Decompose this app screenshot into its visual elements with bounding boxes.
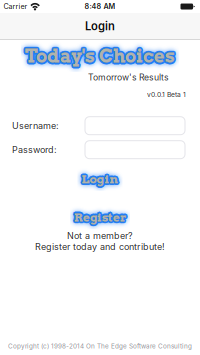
staticText: Today's Choices (25, 44, 175, 66)
staticText: Register (73, 211, 125, 225)
staticText: Register (75, 210, 127, 224)
staticText: Register (74, 210, 126, 224)
staticText: Register (75, 211, 127, 225)
staticText: Register (75, 211, 127, 225)
staticText: Today's Choices (25, 45, 175, 67)
staticText: Today's Choices (25, 46, 175, 68)
staticText: Today's Choices (24, 46, 174, 68)
staticText: Password: (12, 144, 57, 155)
staticText: Login (81, 173, 118, 188)
staticText: Today's Choices (26, 46, 176, 68)
staticText: Login (82, 171, 119, 186)
staticText: Register (73, 211, 125, 225)
staticText: Register (74, 212, 126, 226)
staticText: Today's Choices (26, 46, 176, 68)
staticText: Today's Choices (25, 47, 175, 69)
staticText: Login (80, 170, 117, 185)
staticText: Today's Choices (25, 46, 175, 69)
staticText: Register today and contribute! (35, 241, 165, 252)
staticText: Today's Choices (24, 44, 174, 66)
staticText: Today's Choices (25, 43, 175, 66)
staticText: Today's Choices (24, 46, 174, 68)
staticText: Today's Choices (26, 44, 176, 66)
staticText: Register (74, 212, 126, 226)
staticText: Register (72, 210, 124, 224)
staticText: Register (75, 209, 127, 223)
staticText: Register (75, 210, 127, 224)
staticText: Today's Choices (23, 45, 173, 67)
staticText: Login (81, 173, 118, 187)
staticText: Today's Choices (26, 46, 176, 68)
staticText: Register (74, 209, 126, 223)
staticText: Login (81, 173, 118, 188)
staticText: Login (83, 171, 120, 185)
staticText: Register (73, 209, 125, 224)
staticText: Login (81, 172, 118, 186)
button[interactable]: Register (60, 207, 140, 227)
staticText: Today's Choices (23, 45, 173, 67)
staticText: Login (82, 172, 119, 187)
staticText: 8:48 AM (84, 2, 115, 11)
staticText: Login (81, 172, 118, 187)
staticText: Copyright (c) 1998-2014 On The Edge Soft… (8, 342, 192, 350)
staticText: Register (73, 209, 125, 223)
staticText: Login (81, 172, 118, 186)
staticText: Register (72, 210, 124, 224)
staticText: Login (83, 172, 120, 186)
staticText: Login (83, 170, 120, 185)
staticText: Login (82, 172, 119, 186)
staticText: Login (83, 173, 120, 187)
staticText: Login (81, 172, 118, 186)
staticText: Today's Choices (24, 45, 174, 67)
staticText: Register (74, 209, 126, 223)
staticText: Login (85, 19, 115, 33)
staticText: Carrier (3, 2, 27, 11)
staticText: Today's Choices (24, 46, 174, 68)
staticText: Register (75, 209, 127, 223)
staticText: Login (81, 171, 118, 186)
staticText: Login (81, 170, 118, 184)
staticText: Not a member? (67, 230, 133, 241)
staticText: Register (74, 211, 126, 225)
staticText: Login (83, 172, 120, 186)
staticText: Register (74, 208, 126, 222)
staticText: Register (76, 210, 128, 224)
staticText: Today's Choices (26, 45, 176, 67)
staticText: Login (81, 171, 118, 185)
staticText: Today's Choices (26, 44, 176, 66)
staticText: Login (83, 173, 120, 187)
staticText: v0.0.1 Beta 1 (147, 91, 186, 99)
staticText: Today's Choices (25, 43, 175, 65)
staticText: Today's Choices (24, 44, 174, 66)
staticText: Username: (12, 120, 59, 131)
staticText: Today's Choices (27, 45, 177, 67)
staticText: Login (80, 173, 117, 187)
staticText: Login (80, 171, 117, 185)
staticText: Login (80, 172, 117, 186)
staticText: Login (81, 170, 118, 185)
staticText: Register (73, 209, 125, 223)
staticText: Register (75, 211, 127, 226)
staticText: Login (80, 173, 117, 187)
staticText: Register (73, 211, 125, 226)
staticText: Login (80, 172, 117, 186)
staticText: Today's Choices (26, 44, 176, 66)
staticText: Today's Choices (25, 45, 175, 67)
button[interactable]: Login (67, 169, 132, 189)
staticText: Today's Choices (27, 45, 177, 67)
staticText: Register (74, 210, 126, 224)
staticText: Register (75, 209, 127, 224)
staticText: Register (73, 210, 125, 224)
staticText: Tomorrow's Results (88, 72, 169, 83)
staticText: Today's Choices (24, 44, 174, 66)
